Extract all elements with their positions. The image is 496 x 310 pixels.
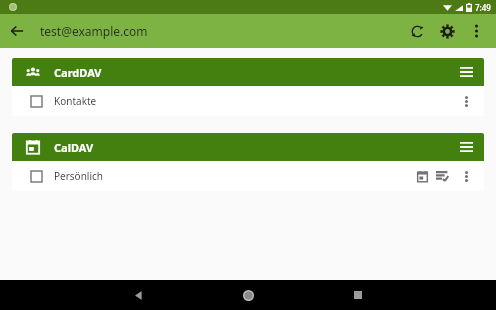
- button[interactable]: Tasks: [432, 166, 452, 186]
- button[interactable]: Back: [123, 280, 153, 310]
- staticText: CardDAV: [54, 65, 102, 80]
- staticText: Kontakte: [54, 94, 97, 108]
- staticText: 7:49: [475, 2, 491, 13]
- button[interactable]: CardDAV: [12, 58, 484, 86]
- button[interactable]: CalDAV: [12, 133, 484, 161]
- button[interactable]: More options: [462, 17, 490, 45]
- staticText: Persönlich: [54, 169, 103, 183]
- button[interactable]: Account menu: [452, 58, 480, 86]
- button[interactable]: Toggle Persönlich: [26, 166, 46, 186]
- button[interactable]: Synchronize: [402, 16, 432, 46]
- button[interactable]: Back: [0, 14, 34, 48]
- button[interactable]: Recent apps: [343, 280, 373, 310]
- button[interactable]: Toggle Kontakte: [26, 91, 46, 111]
- button[interactable]: Account menu: [452, 133, 480, 161]
- button[interactable]: Collection options: [454, 164, 478, 188]
- button[interactable]: Toggle Kontakte: [12, 86, 484, 116]
- button[interactable]: Settings: [432, 16, 462, 46]
- button[interactable]: Home: [233, 280, 263, 310]
- button[interactable]: Toggle Persönlich: [12, 161, 484, 191]
- staticText: CalDAV: [54, 140, 94, 155]
- staticText: test@example.com: [40, 23, 148, 39]
- button[interactable]: Events: [412, 166, 432, 186]
- button[interactable]: Collection options: [454, 89, 478, 113]
